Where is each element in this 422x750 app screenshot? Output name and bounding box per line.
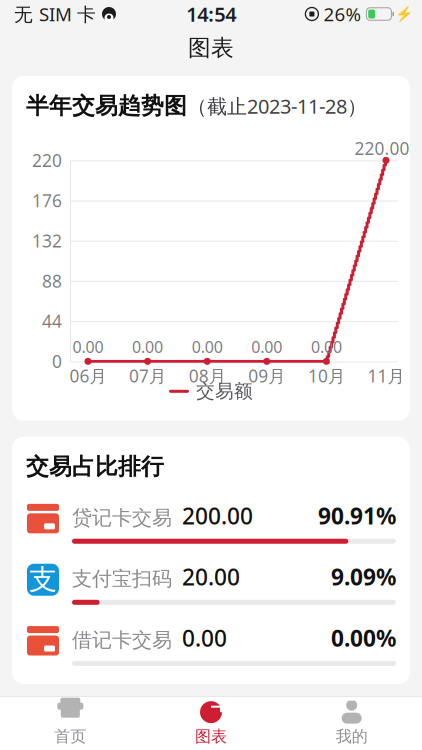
staticText: 交易占比排行 xyxy=(26,453,164,481)
staticText: 交易额 xyxy=(196,380,253,403)
button[interactable]: 支 xyxy=(12,562,410,605)
staticText: 20.00 xyxy=(182,562,240,592)
staticText: 200.00 xyxy=(182,501,253,531)
button[interactable]: 借记卡交易 xyxy=(12,623,410,666)
staticText: 220.00 xyxy=(354,137,409,160)
staticText: 图表 xyxy=(195,727,227,746)
staticText: 0 xyxy=(52,350,62,373)
staticText: 10月 xyxy=(308,364,345,387)
button[interactable]: 贷记卡交易 xyxy=(12,501,410,544)
staticText: 220 xyxy=(32,149,62,172)
staticText: 176 xyxy=(32,189,62,212)
staticText: 90.91% xyxy=(318,501,396,531)
staticText: 支付宝扫码 xyxy=(72,567,172,591)
staticText: ⚡ xyxy=(394,6,412,22)
button[interactable]: 我的 xyxy=(281,693,422,750)
staticText: 09月 xyxy=(248,364,285,387)
staticText: 11月 xyxy=(367,364,404,387)
staticText: 88 xyxy=(42,269,62,292)
staticText: 06月 xyxy=(69,364,106,387)
staticText: 0.00 xyxy=(311,336,342,357)
staticText: 07月 xyxy=(129,364,166,387)
staticText: 我的 xyxy=(336,727,368,746)
button[interactable]: 首页 xyxy=(0,693,141,750)
staticText: 9.09% xyxy=(331,562,396,592)
staticText: 0.00 xyxy=(192,336,223,357)
staticText: 14:54 xyxy=(186,1,236,27)
staticText: 0.00 xyxy=(132,336,163,357)
staticText: 贷记卡交易 xyxy=(72,505,172,530)
staticText: 0.00 xyxy=(251,336,282,357)
staticText: 0.00 xyxy=(182,623,227,653)
staticText: 借记卡交易 xyxy=(72,628,172,652)
staticText: 首页 xyxy=(54,727,86,746)
staticText: 半年交易趋势图 xyxy=(26,92,187,120)
staticText: （截止2023-11-28） xyxy=(187,93,367,119)
staticText: 图表 xyxy=(188,34,234,62)
staticText: 0.00% xyxy=(331,623,396,653)
staticText: 44 xyxy=(42,310,62,333)
staticText: 无 SIM 卡 xyxy=(14,2,96,26)
staticText: 08月 xyxy=(189,364,226,387)
staticText: 0.00 xyxy=(72,336,103,357)
staticText: 26% xyxy=(323,2,361,26)
staticText: 132 xyxy=(32,229,62,252)
button[interactable]: 图表 xyxy=(141,693,281,750)
staticText: 支 xyxy=(29,562,57,597)
